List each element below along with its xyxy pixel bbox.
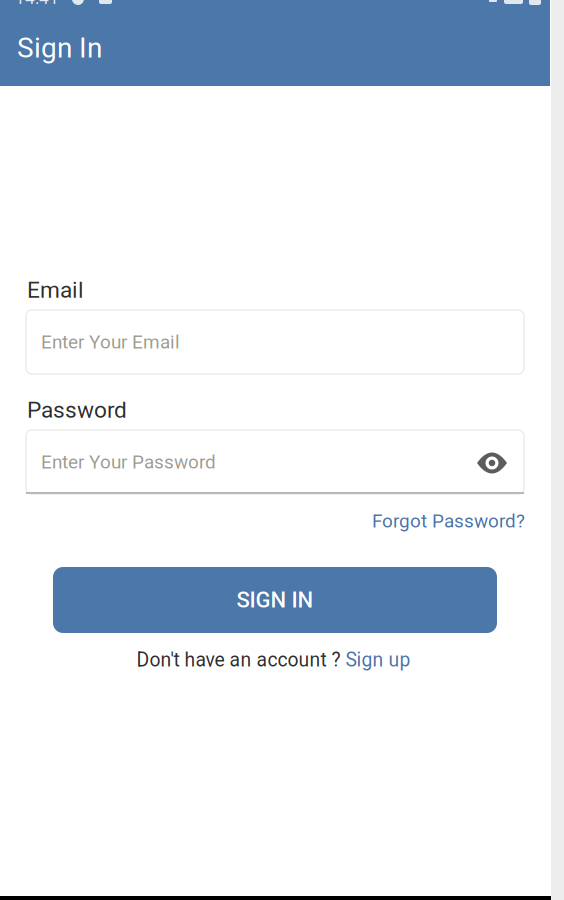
staticText: Password [27, 397, 127, 423]
staticText: Don't have an account ? [136, 649, 345, 671]
button[interactable]: Forgot Password? [345, 508, 525, 534]
secureTextField[interactable]: Enter Your Password [41, 451, 449, 473]
staticText: Enter Your Email [41, 331, 180, 353]
staticText: Sign In [17, 32, 102, 64]
staticText: 14:41 [15, 0, 59, 8]
button[interactable]: SIGN IN [53, 567, 497, 633]
staticText: Sign up [345, 649, 410, 671]
button[interactable]: Show password [464, 431, 520, 495]
staticText: SIGN IN [236, 587, 313, 613]
staticText: Email [27, 277, 84, 303]
staticText: Enter Your Password [41, 451, 216, 473]
staticText: Forgot Password? [372, 510, 525, 532]
button[interactable]: Sign up [345, 649, 410, 671]
textField[interactable]: Enter Your Email [41, 331, 509, 353]
